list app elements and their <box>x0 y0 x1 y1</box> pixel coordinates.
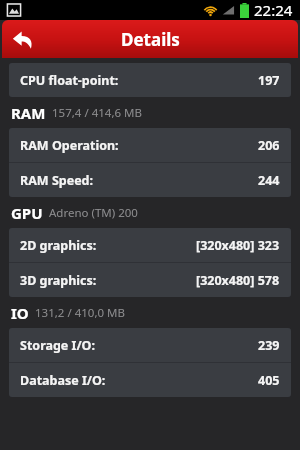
staticText: 405 <box>258 372 280 389</box>
button[interactable]: 2D graphics: <box>9 228 291 262</box>
staticText: GPU <box>11 203 43 223</box>
staticText: 197 <box>258 72 280 89</box>
button[interactable]: RAM Operation: <box>9 128 291 162</box>
staticText: Details <box>121 28 180 51</box>
staticText: CPU float-point: <box>20 72 119 89</box>
staticText: [320x480] 323 <box>196 237 280 254</box>
staticText: RAM <box>11 103 46 123</box>
staticText: Database I/O: <box>20 372 106 389</box>
staticText: IO <box>11 303 29 323</box>
staticText: Adreno (TM) 200 <box>49 205 138 221</box>
button[interactable]: 3D graphics: <box>9 263 291 297</box>
button[interactable]: Database I/O: <box>9 363 291 397</box>
button[interactable]: Back <box>2 20 42 58</box>
staticText: 2D graphics: <box>20 237 97 254</box>
staticText: RAM Speed: <box>20 172 94 189</box>
button[interactable]: RAM Speed: <box>9 163 291 197</box>
staticText: 157,4 / 414,6 MB <box>52 105 142 121</box>
staticText: 131,2 / 410,0 MB <box>35 305 125 321</box>
staticText: 22:24 <box>254 0 293 20</box>
staticText: 244 <box>258 172 280 189</box>
staticText: 206 <box>258 137 280 154</box>
staticText: [320x480] 578 <box>196 272 280 289</box>
button[interactable]: Storage I/O: <box>9 328 291 362</box>
staticText: 239 <box>258 337 280 354</box>
staticText: RAM Operation: <box>20 137 119 154</box>
staticText: Storage I/O: <box>20 337 96 354</box>
button[interactable]: CPU float-point: <box>9 63 291 97</box>
staticText: 3D graphics: <box>20 272 97 289</box>
